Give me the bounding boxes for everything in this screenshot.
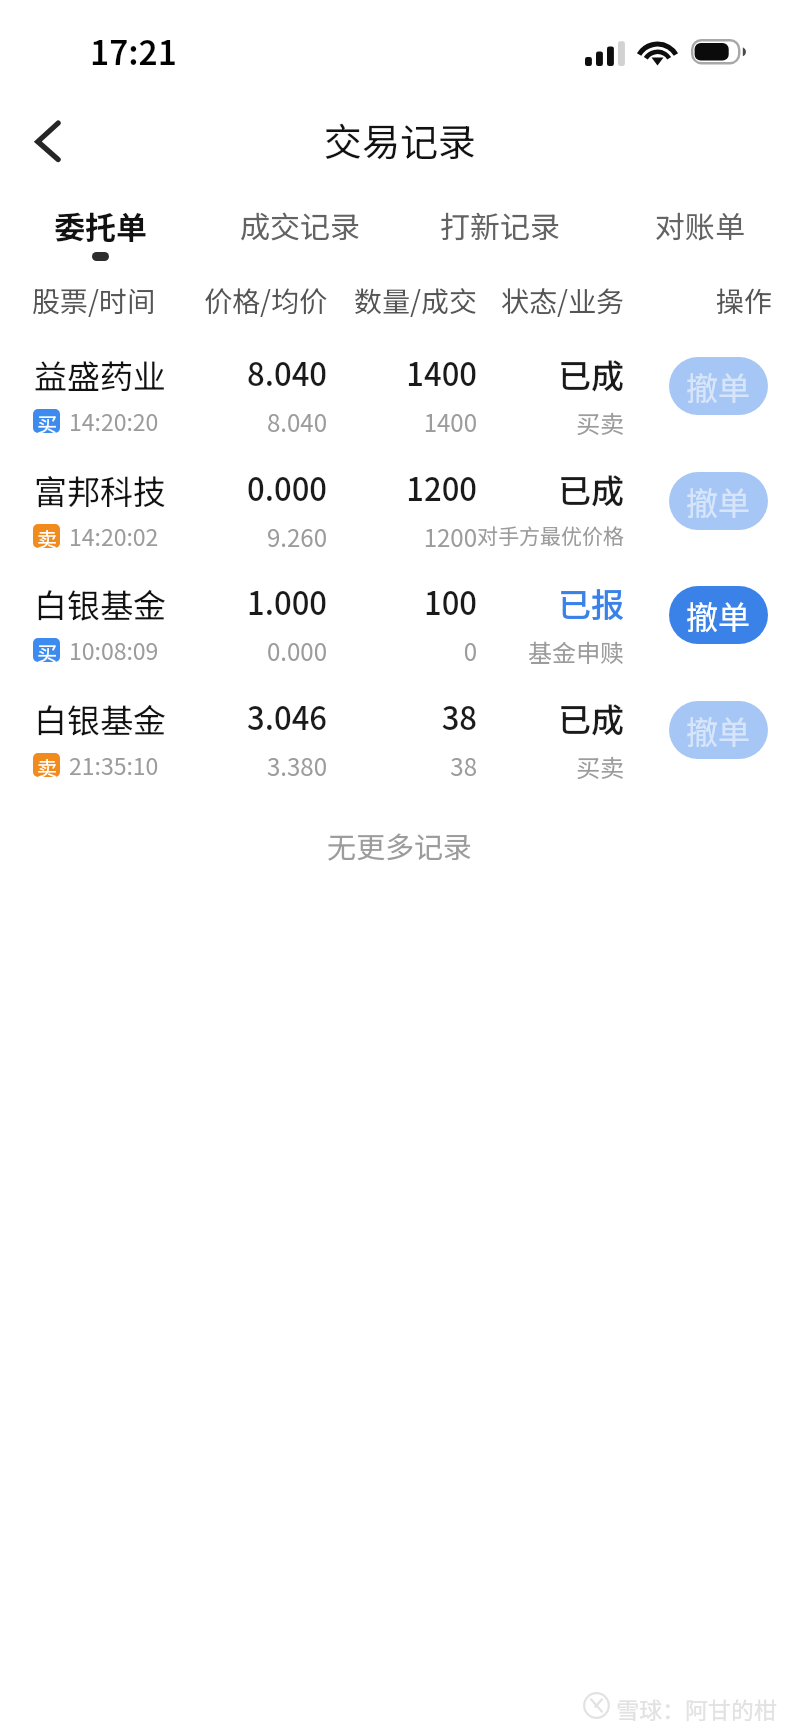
button[interactable]: 委托单 [0, 203, 200, 263]
staticText: 38 [0, 694, 477, 739]
button[interactable]: 打新记录 [400, 203, 600, 263]
staticText: 委托单 [54, 203, 147, 248]
staticText: 撤单 [686, 707, 751, 753]
staticText: 价格/均价 [0, 280, 327, 321]
staticText: 0.000 [0, 633, 327, 668]
staticText: 买卖 [0, 749, 624, 784]
button[interactable]: 撤单 [669, 472, 768, 530]
staticText: 益盛药业 [34, 351, 166, 399]
staticText: 卖 [37, 524, 57, 548]
staticText: 基金申赎 [0, 634, 624, 669]
staticText: 9.260 [0, 519, 327, 554]
staticText: 交易记录 [324, 112, 477, 167]
staticText: 对账单 [655, 203, 745, 246]
staticText: 1200 [0, 465, 477, 510]
staticText: 打新记录 [440, 203, 560, 246]
staticText: 雪球：阿甘的柑 [616, 1692, 777, 1725]
staticText: 已成 [0, 465, 624, 513]
staticText: 买 [37, 638, 57, 662]
staticText: 3.046 [0, 694, 327, 739]
staticText: 1.000 [0, 579, 327, 624]
button[interactable]: 撤单 [669, 701, 768, 759]
staticText: 17:21 [90, 27, 177, 75]
staticText: 1400 [0, 350, 477, 395]
staticText: 买 [37, 409, 57, 433]
staticText: 14:20:20 [69, 404, 159, 437]
button[interactable]: Back [19, 113, 77, 171]
staticText: 已报 [0, 579, 624, 627]
staticText: 数量/成交 [0, 280, 477, 321]
staticText: 卖 [37, 753, 57, 777]
button[interactable]: 富邦科技 [0, 467, 800, 581]
staticText: 1200 [0, 519, 477, 554]
staticText: 14:20:02 [69, 519, 159, 552]
staticText: 状态/业务 [0, 280, 624, 321]
staticText: 8.040 [0, 404, 327, 439]
staticText: 股票/时间 [32, 280, 155, 321]
staticText: 成交记录 [240, 203, 360, 246]
button[interactable]: 撤单 [669, 357, 768, 415]
staticText: 操作 [0, 280, 772, 321]
staticText: 白银基金 [34, 695, 166, 743]
button[interactable]: 益盛药业 [0, 352, 800, 466]
staticText: 买卖 [0, 405, 624, 440]
button[interactable]: 白银基金 [0, 581, 800, 695]
staticText: 无更多记录 [327, 824, 473, 866]
staticText: 21:35:10 [69, 748, 159, 781]
staticText: 8.040 [0, 350, 327, 395]
staticText: 3.380 [0, 748, 327, 783]
staticText: 0 [0, 633, 477, 668]
staticText: 撤单 [686, 478, 751, 524]
staticText: 10:08:09 [69, 633, 159, 666]
staticText: 对手方最优价格 [0, 520, 624, 550]
staticText: 1400 [0, 404, 477, 439]
staticText: 撤单 [686, 592, 751, 638]
button[interactable]: 撤单 [669, 586, 768, 644]
staticText: 38 [0, 748, 477, 783]
staticText: 富邦科技 [34, 466, 166, 514]
staticText: 已成 [0, 694, 624, 742]
staticText: 已成 [0, 350, 624, 398]
staticText: 100 [0, 579, 477, 624]
staticText: 撤单 [686, 363, 751, 409]
staticText: 白银基金 [34, 580, 166, 628]
button[interactable]: 成交记录 [200, 203, 400, 263]
staticText: 0.000 [0, 465, 327, 510]
button[interactable]: 对账单 [600, 203, 800, 263]
button[interactable]: 白银基金 [0, 696, 800, 810]
